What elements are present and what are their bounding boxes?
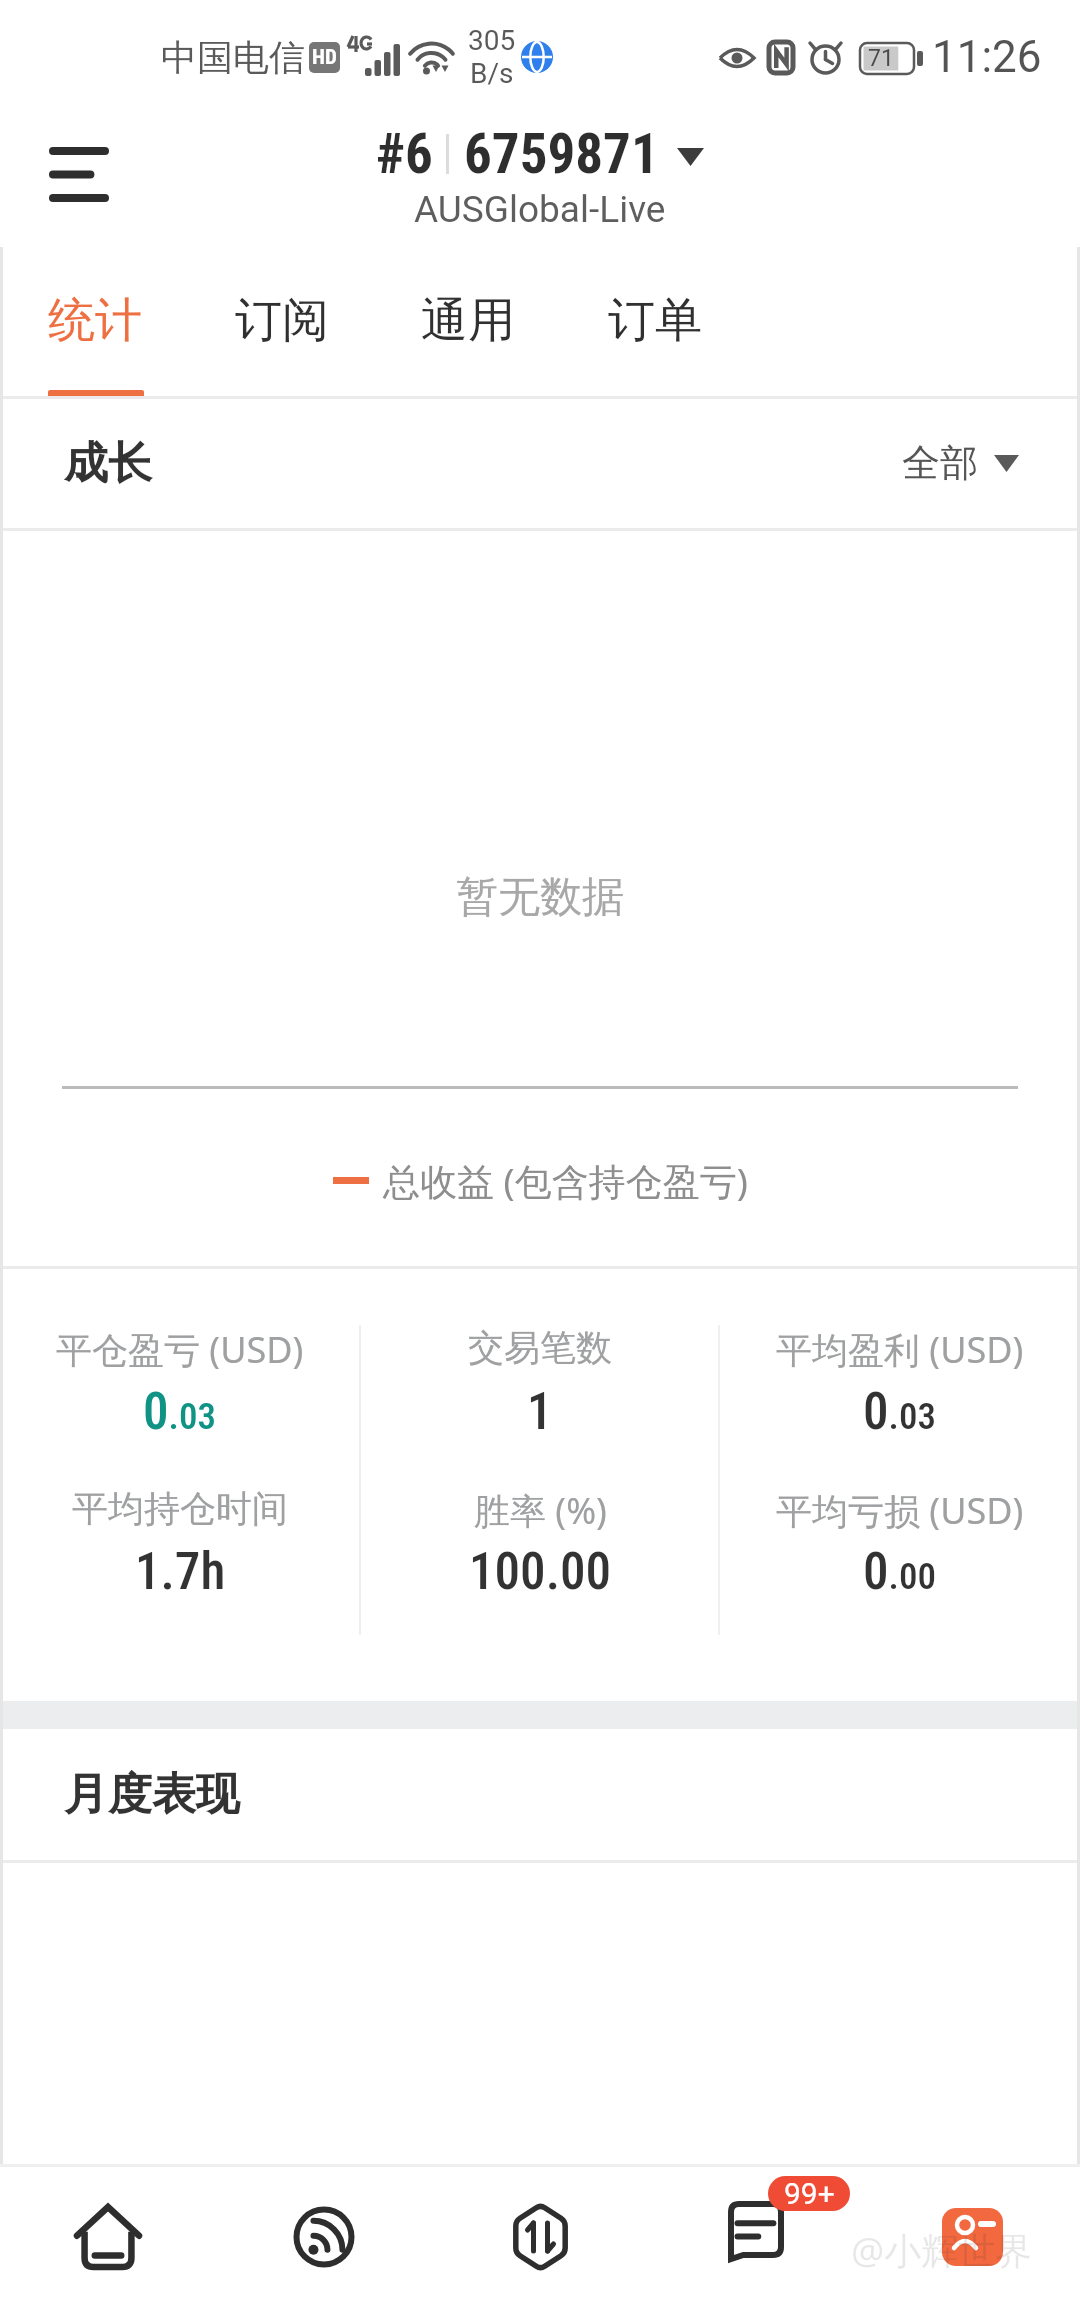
staticText: 统计: [48, 291, 142, 350]
staticText: 全部: [902, 439, 978, 487]
staticText: 0.03: [143, 1382, 217, 1442]
staticText: 0.00: [863, 1542, 937, 1602]
button[interactable]: 通用: [373, 245, 560, 398]
staticText: 平均盈利 (USD): [776, 1325, 1024, 1374]
staticText: 1: [527, 1382, 553, 1442]
button[interactable]: Home: [0, 2164, 216, 2310]
button[interactable]: 统计: [0, 245, 187, 398]
button[interactable]: Menu: [19, 124, 139, 224]
staticText: 胜率 (%): [474, 1486, 607, 1535]
staticText: 99+: [784, 2176, 835, 2211]
staticText: 11:26: [932, 31, 1042, 83]
button[interactable]: 订单: [560, 245, 747, 398]
staticText: 305: [468, 24, 516, 57]
staticText: 6759871: [464, 122, 659, 186]
button[interactable]: 订阅: [187, 245, 374, 398]
staticText: 100.00: [469, 1542, 612, 1602]
staticText: #6: [376, 122, 433, 186]
button[interactable]: Trade: [432, 2164, 648, 2310]
staticText: 订阅: [235, 291, 329, 350]
staticText: 订单: [608, 291, 702, 350]
staticText: 71: [868, 45, 894, 72]
staticText: 平均亏损 (USD): [776, 1486, 1024, 1535]
button[interactable]: #6: [350, 112, 730, 237]
staticText: 平均持仓时间: [72, 1486, 288, 1531]
button[interactable]: Messages: [648, 2164, 864, 2310]
staticText: 暂无数据: [456, 871, 624, 924]
staticText: 成长: [64, 436, 152, 491]
staticText: 平仓盈亏 (USD): [56, 1325, 304, 1374]
button[interactable]: Signals: [216, 2164, 432, 2310]
staticText: 月度表现: [64, 1767, 240, 1822]
staticText: AUSGlobal-Live: [414, 188, 666, 231]
staticText: 0.03: [863, 1382, 937, 1442]
staticText: HD: [312, 45, 337, 70]
staticText: 通用: [421, 291, 515, 350]
staticText: 中国电信: [161, 35, 305, 80]
staticText: @小辉世界: [851, 2224, 1033, 2275]
staticText: B/s: [470, 57, 514, 90]
staticText: 总收益 (包含持仓盈亏): [383, 1155, 748, 1206]
staticText: 交易笔数: [468, 1325, 612, 1370]
staticText: 1.7h: [135, 1542, 226, 1602]
button[interactable]: 全部: [902, 439, 1019, 487]
button[interactable]: Profile: [864, 2164, 1080, 2310]
